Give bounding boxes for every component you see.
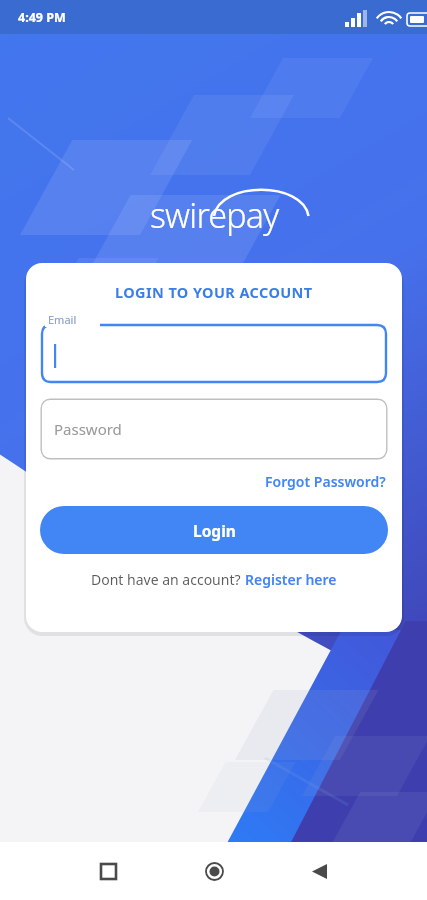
staticText: LOGIN TO YOUR ACCOUNT [115, 282, 313, 302]
button[interactable]: Home [194, 851, 234, 891]
staticText: Email [48, 312, 77, 327]
button[interactable]: Recent apps [88, 851, 128, 891]
button[interactable]: Login [40, 506, 388, 554]
button[interactable]: Password [40, 398, 388, 460]
staticText: Dont have an account? [91, 570, 245, 589]
button[interactable]: Forgot Password? [263, 469, 388, 494]
button[interactable]: Back [299, 851, 339, 891]
button[interactable]: Email [40, 318, 388, 384]
staticText: Password [54, 419, 122, 439]
button[interactable]: Register here [245, 570, 337, 589]
staticText: 4:49 PM [18, 9, 66, 26]
staticText: Register here [245, 570, 337, 589]
staticText: Forgot Password? [265, 472, 386, 491]
staticText: Login [193, 520, 236, 541]
staticText: swirepay [150, 192, 279, 238]
